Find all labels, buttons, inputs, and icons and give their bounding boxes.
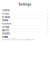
staticText: Display [2,16,10,18]
button[interactable]: General [0,9,50,12]
staticText: General [2,9,10,12]
button[interactable]: Storage [0,25,50,29]
button[interactable]: Network [0,22,50,25]
button[interactable]: Sounds [0,19,50,22]
staticText: Settings [18,3,31,6]
staticText: Sounds [2,19,8,22]
button[interactable]: Display [0,15,50,19]
staticText: Network [2,22,11,25]
staticText: About [2,35,8,38]
button[interactable]: Privacy [0,12,50,15]
staticText: Accounts [2,32,10,35]
button[interactable]: Battery [0,29,50,32]
button[interactable]: Accounts [0,32,50,35]
staticText: Storage [2,26,9,28]
staticText: Battery [2,29,9,32]
staticText: Version 1.0 (2024.11) · Last synced just… [2,39,34,41]
staticText: Privacy [2,12,9,15]
